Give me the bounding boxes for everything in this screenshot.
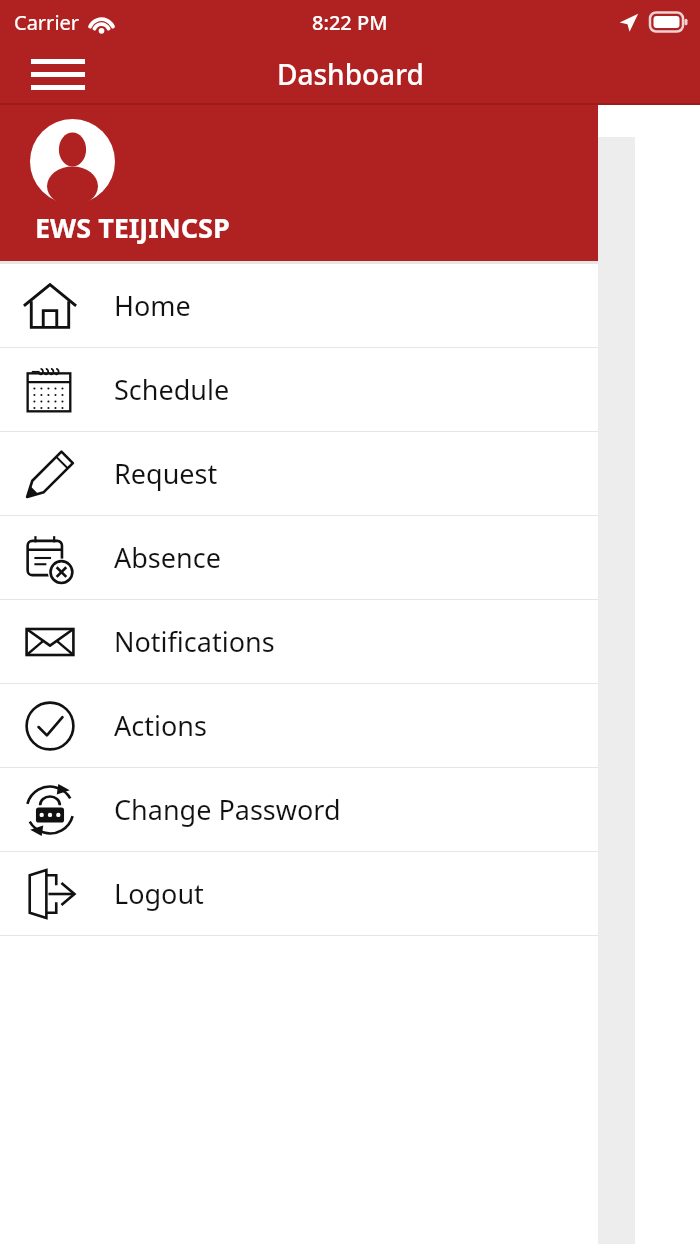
- button[interactable]: Actions: [0, 684, 598, 767]
- button[interactable]: Schedule: [0, 348, 598, 431]
- staticText: Request: [114, 455, 218, 492]
- button[interactable]: Absence: [0, 516, 598, 599]
- button[interactable]: Open navigation menu: [14, 44, 102, 104]
- staticText: Home: [114, 287, 191, 324]
- staticText: Actions: [114, 707, 207, 744]
- staticText: Notifications: [114, 623, 275, 660]
- staticText: EWS TEIJINCSP: [35, 209, 230, 246]
- staticText: Logout: [114, 875, 204, 912]
- staticText: 8:22 PM: [312, 9, 388, 36]
- button[interactable]: EWS TEIJINCSP: [0, 105, 598, 261]
- button[interactable]: Change Password: [0, 768, 598, 851]
- button[interactable]: Request: [0, 432, 598, 515]
- staticText: Absence: [114, 539, 221, 576]
- staticText: Schedule: [114, 371, 230, 408]
- button[interactable]: Logout: [0, 852, 598, 935]
- staticText: Change Password: [114, 791, 341, 828]
- button[interactable]: Home: [0, 264, 598, 347]
- staticText: Carrier: [14, 9, 80, 36]
- staticText: Dashboard: [277, 55, 424, 93]
- button[interactable]: Notifications: [0, 600, 598, 683]
